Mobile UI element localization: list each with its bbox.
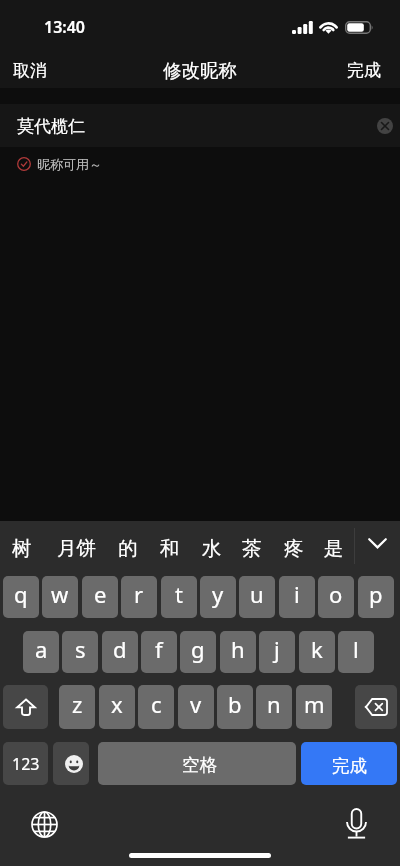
staticText: 茶: [242, 536, 262, 561]
staticText: i: [294, 579, 300, 609]
button[interactable]: 空格: [98, 742, 296, 785]
staticText: k: [311, 634, 323, 664]
staticText: p: [369, 579, 383, 609]
staticText: u: [250, 579, 264, 609]
staticText: r: [134, 579, 144, 609]
button[interactable]: Shift: [3, 685, 48, 729]
staticText: y: [212, 579, 224, 609]
button[interactable]: 和: [151, 529, 189, 568]
button[interactable]: o: [318, 576, 354, 618]
button[interactable]: g: [180, 631, 216, 673]
button[interactable]: u: [239, 576, 275, 618]
button[interactable]: n: [256, 685, 292, 729]
staticText: 空格: [182, 754, 217, 776]
button[interactable]: Voice input: [338, 805, 374, 841]
button[interactable]: h: [220, 631, 256, 673]
button[interactable]: f: [141, 631, 177, 673]
button[interactable]: 疼: [275, 529, 313, 568]
button[interactable]: c: [138, 685, 174, 729]
button[interactable]: i: [279, 576, 315, 618]
button[interactable]: y: [200, 576, 236, 618]
button[interactable]: 树: [3, 529, 41, 568]
button[interactable]: 月饼: [48, 529, 105, 568]
staticText: 13:40: [44, 16, 86, 38]
button[interactable]: 水: [193, 529, 231, 568]
button[interactable]: e: [82, 576, 118, 618]
staticText: 昵称可用～: [37, 156, 102, 172]
button[interactable]: b: [217, 685, 253, 729]
staticText: f: [155, 634, 163, 664]
staticText: 修改昵称: [163, 59, 237, 82]
button[interactable]: a: [23, 631, 59, 673]
button[interactable]: k: [299, 631, 335, 673]
staticText: 树: [12, 536, 32, 561]
button[interactable]: p: [358, 576, 394, 618]
button[interactable]: l: [338, 631, 374, 673]
staticText: 123: [12, 753, 40, 775]
staticText: x: [111, 689, 123, 719]
staticText: 和: [160, 536, 180, 561]
staticText: o: [329, 579, 343, 609]
staticText: h: [231, 634, 245, 664]
button[interactable]: 123: [3, 742, 48, 785]
staticText: e: [94, 579, 107, 609]
button[interactable]: 茶: [233, 529, 271, 568]
staticText: v: [190, 689, 202, 719]
button[interactable]: 是: [315, 529, 353, 568]
button[interactable]: Emoji: [53, 742, 89, 785]
button[interactable]: 完成: [301, 742, 397, 785]
staticText: 是: [324, 536, 344, 561]
button[interactable]: x: [99, 685, 135, 729]
button[interactable]: 取消: [0, 50, 60, 91]
staticText: z: [72, 689, 83, 719]
button[interactable]: w: [42, 576, 78, 618]
button[interactable]: q: [3, 576, 39, 618]
button[interactable]: z: [59, 685, 95, 729]
staticText: s: [75, 634, 86, 664]
button[interactable]: j: [259, 631, 295, 673]
staticText: j: [274, 634, 280, 664]
staticText: q: [14, 579, 28, 609]
button[interactable]: t: [161, 576, 197, 618]
staticText: m: [304, 689, 325, 719]
staticText: 疼: [284, 536, 304, 561]
staticText: n: [267, 689, 281, 719]
staticText: d: [113, 634, 127, 664]
button[interactable]: Change keyboard: [26, 806, 62, 842]
button[interactable]: d: [102, 631, 138, 673]
staticText: 的: [118, 536, 138, 561]
button[interactable]: Hide keyboard: [361, 524, 393, 562]
staticText: g: [191, 634, 205, 664]
staticText: 完成: [347, 60, 381, 81]
button[interactable]: 的: [109, 529, 147, 568]
button[interactable]: m: [296, 685, 332, 729]
staticText: c: [151, 689, 162, 719]
staticText: 取消: [13, 60, 47, 81]
staticText: 月饼: [57, 536, 96, 561]
button[interactable]: s: [62, 631, 98, 673]
staticText: w: [51, 579, 69, 609]
staticText: t: [175, 579, 183, 609]
staticText: 水: [202, 536, 222, 561]
button[interactable]: Delete: [355, 685, 397, 729]
staticText: 莫代榄仁: [17, 116, 85, 137]
staticText: b: [228, 689, 242, 719]
staticText: a: [35, 634, 48, 664]
staticText: l: [353, 634, 359, 664]
button[interactable]: Clear text: [370, 111, 400, 141]
button[interactable]: r: [121, 576, 157, 618]
staticText: 完成: [332, 755, 367, 777]
button[interactable]: v: [178, 685, 214, 729]
button[interactable]: 完成: [328, 50, 400, 91]
